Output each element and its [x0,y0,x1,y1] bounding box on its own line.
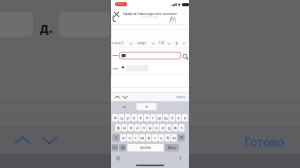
button[interactable]: н [144,114,149,121]
button[interactable]: Previous field [13,132,33,150]
staticText: с [135,135,137,140]
button[interactable]: ш [157,114,162,121]
staticText: 100 [159,41,165,45]
staticText: д [168,125,170,130]
button[interactable]: щ [163,114,169,121]
staticText: Готово [244,134,284,150]
staticText: ☺ [121,145,125,150]
button[interactable]: Готово [240,134,288,150]
staticText: 9 [122,41,124,45]
button[interactable]: е [138,114,143,121]
button[interactable]: Close [113,10,121,18]
staticText: о [155,125,157,130]
button[interactable]: ц [118,114,124,121]
button[interactable]: Пробел [127,144,164,151]
staticText: ⌫ [179,136,183,139]
staticText: Вверх [137,41,145,45]
button[interactable]: More options [181,10,188,17]
button[interactable]: б [165,134,170,141]
button[interactable]: л [160,124,165,131]
staticText: л [162,125,164,130]
staticText: й [114,115,116,120]
staticText: т [154,135,156,140]
button[interactable]: с [133,134,139,141]
staticText: ф [175,41,177,45]
button[interactable]: д [166,124,172,131]
staticText: б [167,135,169,140]
button[interactable]: м [139,134,145,141]
button[interactable]: Next [122,94,129,101]
staticText: ч [128,135,130,140]
staticText: 16:31 [116,2,125,6]
staticText: ··· [183,10,186,16]
staticText: ф [117,125,120,130]
button[interactable]: ь [158,134,164,141]
staticText: 123 [112,146,118,149]
button[interactable]: и [146,134,151,141]
button[interactable]: р [147,124,153,131]
staticText: н [146,115,148,120]
staticText: ю [172,135,175,140]
staticText: з [171,115,173,120]
button[interactable]: Dictate [178,156,183,161]
staticText: п [143,125,145,130]
button[interactable]: ф [115,124,121,131]
staticText: ь [160,135,162,140]
button[interactable]: Switch keyboard [116,156,121,161]
button[interactable]: г [150,114,156,121]
button[interactable]: х [176,114,181,121]
staticText: ц [120,115,122,120]
button[interactable]: Previous [114,94,121,101]
staticText: эл. [123,105,127,108]
button[interactable]: у [125,114,130,121]
button[interactable]: в [128,124,134,131]
button[interactable]: эл. [119,104,130,110]
staticText: Ввод [168,146,176,149]
staticText: э [181,125,183,130]
button[interactable]: 123 [112,144,118,151]
staticText: Ячейка [111,41,120,45]
staticText: а [136,125,138,130]
staticText: я [122,135,124,140]
button[interactable]: а [134,124,140,131]
button[interactable]: ч [127,134,132,141]
button[interactable]: я [120,134,126,141]
button[interactable]: ☺ [119,144,126,151]
staticText: е [139,115,141,120]
button[interactable]: з [169,114,175,121]
staticText: ⇧ [114,135,117,140]
button[interactable]: э [179,124,184,131]
staticText: ж [145,105,147,108]
button[interactable]: ю [171,134,177,141]
staticText: ж [174,125,177,130]
staticText: р [149,125,151,130]
button[interactable]: ы [122,124,127,131]
button[interactable]: ж [136,103,156,110]
staticText: обновлено сегодня [142,16,158,18]
staticText: щ [164,115,168,120]
button[interactable]: ⇧ [112,134,120,141]
button[interactable]: Ввод [165,144,179,151]
staticText: ы [123,125,126,130]
button[interactable]: Next field [40,132,60,150]
button[interactable]: й [112,114,118,121]
button[interactable]: т [152,134,158,141]
staticText: ъ [184,115,186,120]
staticText: м [141,135,144,140]
staticText: и [148,135,150,140]
staticText: в [130,125,132,130]
staticText: у [127,115,129,120]
staticText: Пробел [140,146,151,149]
button[interactable]: ъ [182,114,188,121]
staticText: к [133,115,135,120]
button[interactable]: к [131,114,137,121]
staticText: Карьерная база сотрудников компании [123,12,177,16]
staticText: г [152,115,154,120]
button[interactable]: ж [173,124,178,131]
button[interactable]: Готово [173,94,187,100]
button[interactable]: п [141,124,146,131]
button[interactable]: о [153,124,159,131]
staticText: д. [40,19,53,37]
staticText: х [177,115,179,120]
button[interactable]: ⌫ [177,134,185,141]
